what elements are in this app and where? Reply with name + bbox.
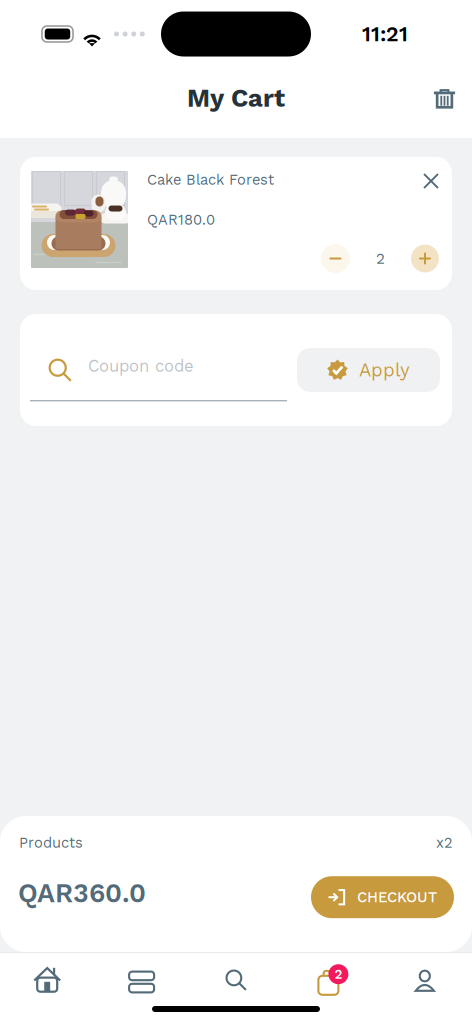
button[interactable]: Delete all: [424, 78, 465, 119]
button[interactable]: Remove item: [418, 168, 444, 194]
staticText: QAR180.0: [147, 211, 215, 228]
staticText: x2: [436, 834, 453, 851]
staticText: Products: [19, 834, 83, 851]
button[interactable]: CHECKOUT: [311, 876, 454, 918]
staticText: 2: [376, 249, 385, 267]
staticText: CHECKOUT: [357, 888, 437, 906]
button[interactable]: Categories: [94, 959, 189, 999]
staticText: My Cart: [187, 83, 285, 113]
staticText: Coupon code: [88, 356, 194, 376]
staticText: QAR360.0: [18, 878, 146, 909]
button[interactable]: Cart, 2 items: [283, 959, 378, 999]
button[interactable]: Search: [189, 959, 283, 999]
button[interactable]: Home: [0, 959, 94, 999]
button[interactable]: Increase quantity: [411, 244, 439, 272]
staticText: 2: [334, 966, 342, 982]
button[interactable]: Decrease quantity: [321, 244, 350, 273]
button[interactable]: Apply: [297, 348, 440, 392]
staticText: 11:21: [362, 21, 408, 46]
staticText: Apply: [359, 359, 410, 381]
staticText: Cake Black Forest: [147, 171, 274, 188]
button[interactable]: Profile: [378, 959, 472, 999]
